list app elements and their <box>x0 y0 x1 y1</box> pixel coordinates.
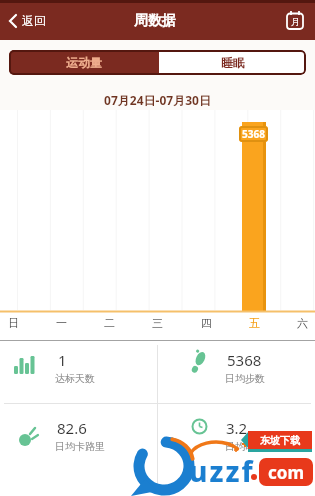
button[interactable] <box>158 342 315 403</box>
button[interactable]: 月 <box>283 8 307 32</box>
button[interactable]: 运动量 <box>9 50 159 75</box>
staticText: 四 <box>201 316 212 330</box>
staticText: 日均卡路里 <box>55 440 105 453</box>
button[interactable] <box>158 404 315 496</box>
staticText: 5368 <box>227 350 262 369</box>
staticText: 82.6 <box>57 418 87 437</box>
button[interactable]: 睡眠 <box>159 50 306 75</box>
button[interactable] <box>0 404 157 496</box>
staticText: com <box>268 461 304 484</box>
staticText: 达标天数 <box>55 372 95 385</box>
staticText: 二 <box>104 316 115 330</box>
staticText: 月 <box>291 16 300 27</box>
staticText: 六 <box>297 316 308 330</box>
button[interactable] <box>0 342 157 403</box>
button[interactable]: 返回 <box>4 9 50 32</box>
staticText: 5368 <box>242 127 265 141</box>
staticText: 五 <box>249 316 260 330</box>
staticText: 日 <box>8 316 19 330</box>
staticText: 返回 <box>22 13 46 28</box>
staticText: 一 <box>56 316 67 330</box>
staticText: 07月24日-07月30日 <box>104 92 211 108</box>
staticText: 1 <box>58 350 67 369</box>
staticText: 日均时长 <box>225 440 265 453</box>
staticText: 日均步数 <box>225 372 265 385</box>
staticText: 三 <box>152 316 163 330</box>
staticText: 运动量 <box>66 55 102 70</box>
staticText: 东坡下载 <box>260 434 300 447</box>
staticText: uzzf <box>189 452 255 490</box>
staticText: 睡眠 <box>221 55 245 70</box>
staticText: 周数据 <box>134 12 176 30</box>
staticText: 3.2 <box>226 418 248 437</box>
